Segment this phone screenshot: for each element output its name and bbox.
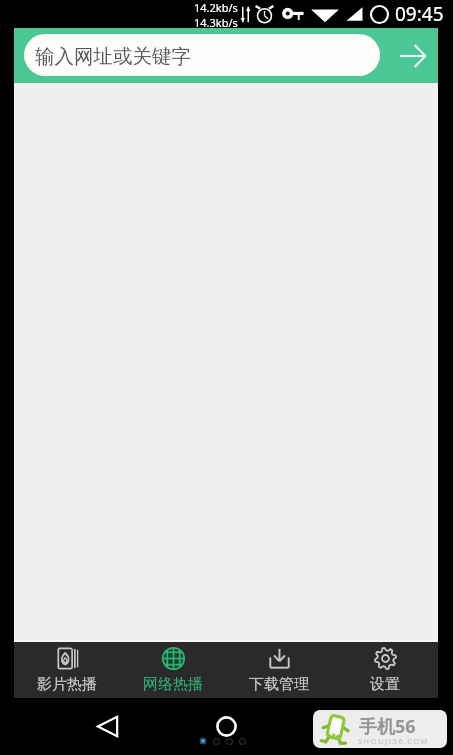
staticText: 14.3kb/s <box>194 15 238 28</box>
staticText: 下载管理 <box>249 675 309 694</box>
button[interactable]: Back <box>91 710 123 742</box>
staticText: 网络热播 <box>143 675 203 694</box>
button[interactable]: 下载管理 <box>226 642 332 698</box>
staticText: 手机56 <box>359 714 416 739</box>
button[interactable]: 设置 <box>332 642 438 698</box>
staticText: 09:45 <box>395 1 444 27</box>
button[interactable]: Go <box>383 28 438 83</box>
staticText: 影片热播 <box>37 675 97 694</box>
staticText: 输入网址或关键字 <box>35 44 191 69</box>
staticText: 14.2kb/s <box>194 0 238 15</box>
button[interactable]: Home <box>210 710 243 743</box>
button[interactable]: 输入网址或关键字 <box>24 34 380 76</box>
staticText: SHOUJI56.COM <box>358 736 430 746</box>
button[interactable]: 网络热播 <box>120 642 226 698</box>
staticText: 设置 <box>370 675 400 694</box>
button[interactable]: 影片热播 <box>14 642 120 698</box>
